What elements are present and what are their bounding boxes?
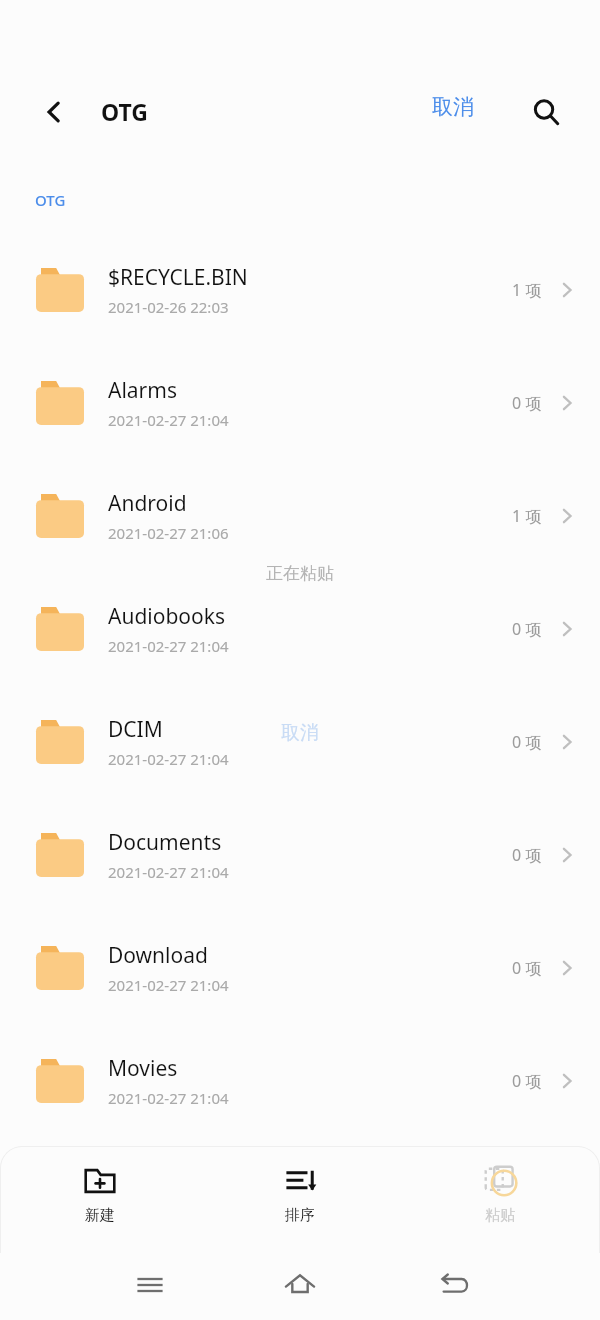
staticText: 0 项 <box>512 957 542 979</box>
staticText: 2021-02-27 21:04 <box>108 975 229 995</box>
staticText: $RECYCLE.BIN <box>108 263 248 292</box>
staticText: 0 项 <box>512 731 542 753</box>
staticText: 粘贴 <box>485 1206 515 1225</box>
staticText: 0 项 <box>512 618 542 640</box>
staticText: 2021-02-27 21:04 <box>108 410 229 430</box>
staticText: 取消 <box>281 721 319 745</box>
button[interactable]: Documents <box>0 798 600 911</box>
staticText: DCIM <box>108 715 163 744</box>
staticText: 1 项 <box>512 279 542 301</box>
staticText: 2021-02-26 22:03 <box>108 297 229 317</box>
staticText: 新建 <box>85 1206 115 1225</box>
staticText: 正在粘贴 <box>0 563 600 584</box>
staticText: Android <box>108 489 187 518</box>
staticText: 0 项 <box>512 392 542 414</box>
button[interactable]: Movies <box>0 1024 600 1137</box>
staticText: 2021-02-27 21:06 <box>108 523 229 543</box>
button[interactable]: 新建 <box>0 1146 200 1253</box>
staticText: Alarms <box>108 376 177 405</box>
button[interactable]: Home <box>264 1249 336 1320</box>
button[interactable]: 取消 <box>432 94 474 120</box>
button[interactable]: Back <box>419 1249 491 1320</box>
button[interactable]: Android <box>0 459 600 572</box>
staticText: Audiobooks <box>108 602 226 631</box>
staticText: OTG <box>35 190 66 210</box>
staticText: 排序 <box>285 1206 315 1225</box>
staticText: Documents <box>108 828 222 857</box>
staticText: 0 项 <box>512 844 542 866</box>
staticText: 2021-02-27 21:04 <box>108 749 229 769</box>
button[interactable]: OTG <box>35 190 66 210</box>
button[interactable]: Download <box>0 911 600 1024</box>
button[interactable]: 取消 <box>281 721 319 745</box>
staticText: OTG <box>101 96 148 127</box>
button[interactable]: $RECYCLE.BIN <box>0 233 600 346</box>
button[interactable]: Audiobooks <box>0 572 600 685</box>
button[interactable]: Search <box>519 85 573 139</box>
button[interactable]: Alarms <box>0 346 600 459</box>
staticText: Download <box>108 941 208 970</box>
button[interactable]: 粘贴 <box>400 1146 600 1253</box>
staticText: 2021-02-27 21:04 <box>108 862 229 882</box>
staticText: 2021-02-27 21:04 <box>108 636 229 656</box>
staticText: 取消 <box>432 94 474 120</box>
button[interactable]: Back <box>28 86 80 138</box>
button[interactable]: 排序 <box>200 1146 400 1253</box>
staticText: 2021-02-27 21:04 <box>108 1088 229 1108</box>
staticText: 1 项 <box>512 505 542 527</box>
button[interactable]: Recents <box>114 1249 186 1320</box>
staticText: Movies <box>108 1054 178 1083</box>
staticText: 0 项 <box>512 1070 542 1092</box>
button[interactable]: DCIM <box>0 685 600 798</box>
